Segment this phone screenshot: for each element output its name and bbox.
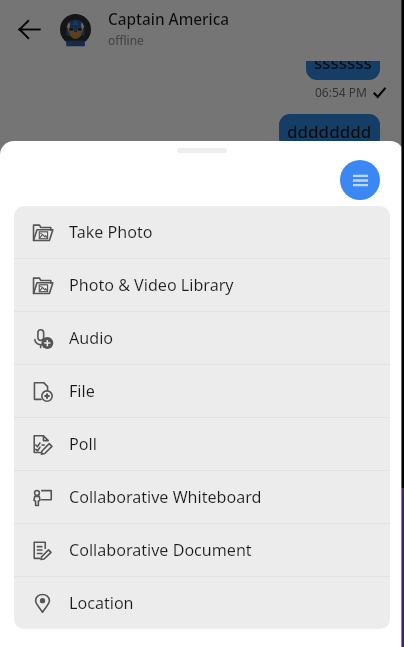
button[interactable]: Photo & Video Library xyxy=(14,259,390,311)
staticText: Take Photo xyxy=(69,221,153,243)
button[interactable]: Collaborative Document xyxy=(14,524,390,576)
button[interactable]: Poll xyxy=(14,418,390,470)
staticText: 06:54 PM xyxy=(315,84,367,100)
staticText: Photo & Video Library xyxy=(69,274,234,296)
staticText: Audio xyxy=(69,327,114,349)
button[interactable]: Back xyxy=(0,0,59,59)
button[interactable]: Attachment menu xyxy=(340,160,380,200)
staticText: Poll xyxy=(69,433,97,455)
staticText: offline xyxy=(108,32,144,48)
button[interactable]: Collaborative Whiteboard xyxy=(14,471,390,523)
staticText: sssssss xyxy=(314,61,372,74)
button[interactable]: Location xyxy=(14,577,390,629)
button[interactable]: File xyxy=(14,365,390,417)
staticText: Captain America xyxy=(108,9,230,30)
staticText: Location xyxy=(69,592,134,614)
staticText: File xyxy=(69,380,95,402)
button[interactable]: Take Photo xyxy=(14,206,390,258)
staticText: dddddddd xyxy=(287,120,372,143)
button[interactable]: Audio xyxy=(14,312,390,364)
staticText: Collaborative Whiteboard xyxy=(69,486,262,508)
staticText: Collaborative Document xyxy=(69,539,252,561)
